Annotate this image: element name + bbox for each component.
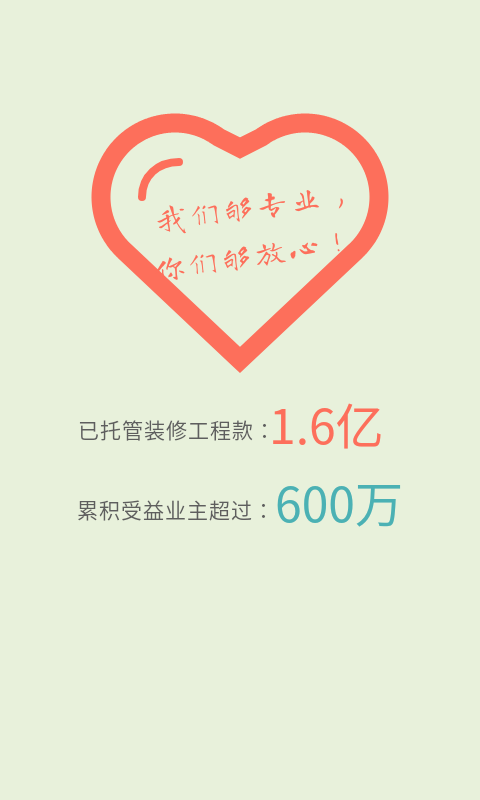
staticText: 累积受益业主超过： [77,494,275,524]
staticText: 已托管装修工程款： [78,414,276,444]
staticText: 你们够放心！ [151,223,358,285]
other: Heart logo [0,0,480,800]
button[interactable]: Splash screen [0,0,480,800]
staticText: 600万 [275,466,403,536]
staticText: 1.6亿 [269,388,384,458]
staticText: 我们够专业， [153,174,360,236]
